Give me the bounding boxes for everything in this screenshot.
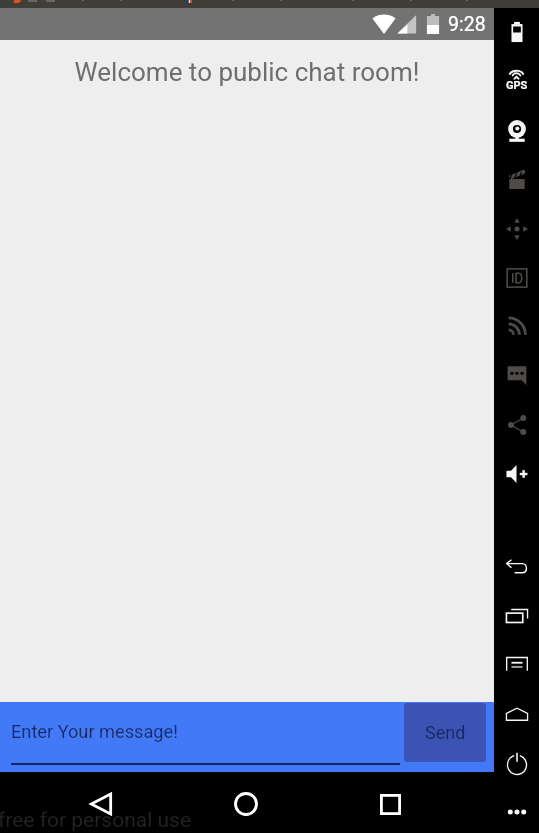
staticText: free for personal use bbox=[0, 808, 192, 833]
button[interactable]: Record and playback bbox=[494, 167, 539, 191]
staticText: 9:28 bbox=[448, 13, 486, 36]
button[interactable]: Cellular bbox=[494, 314, 539, 338]
staticText: GPS bbox=[506, 79, 528, 92]
staticText: Enter Your message! bbox=[11, 721, 178, 742]
button[interactable]: Home bbox=[494, 702, 539, 726]
button[interactable]: Back bbox=[494, 555, 539, 579]
staticText: Send bbox=[425, 722, 466, 743]
button[interactable]: Overview bbox=[494, 604, 539, 628]
button[interactable]: Camera bbox=[494, 120, 539, 144]
button[interactable]: Battery bbox=[494, 20, 539, 44]
button[interactable]: Recent apps bbox=[370, 782, 410, 824]
button[interactable]: Location GPS bbox=[494, 68, 539, 92]
button[interactable]: Volume up bbox=[494, 462, 539, 486]
button[interactable]: Send bbox=[404, 703, 486, 762]
button[interactable]: Share bbox=[494, 413, 539, 437]
button[interactable]: Phone ID bbox=[494, 266, 539, 290]
button[interactable]: Enter Your message! bbox=[11, 702, 400, 772]
button[interactable]: Power bbox=[494, 750, 539, 774]
button[interactable]: Directional pad bbox=[494, 217, 539, 241]
button[interactable]: More bbox=[494, 800, 539, 824]
button[interactable]: Home bbox=[226, 782, 266, 824]
button[interactable]: Back bbox=[81, 782, 121, 824]
staticText: Welcome to public chat room! bbox=[0, 57, 494, 87]
button[interactable]: Menu bbox=[494, 652, 539, 676]
button[interactable]: Messages bbox=[494, 363, 539, 387]
